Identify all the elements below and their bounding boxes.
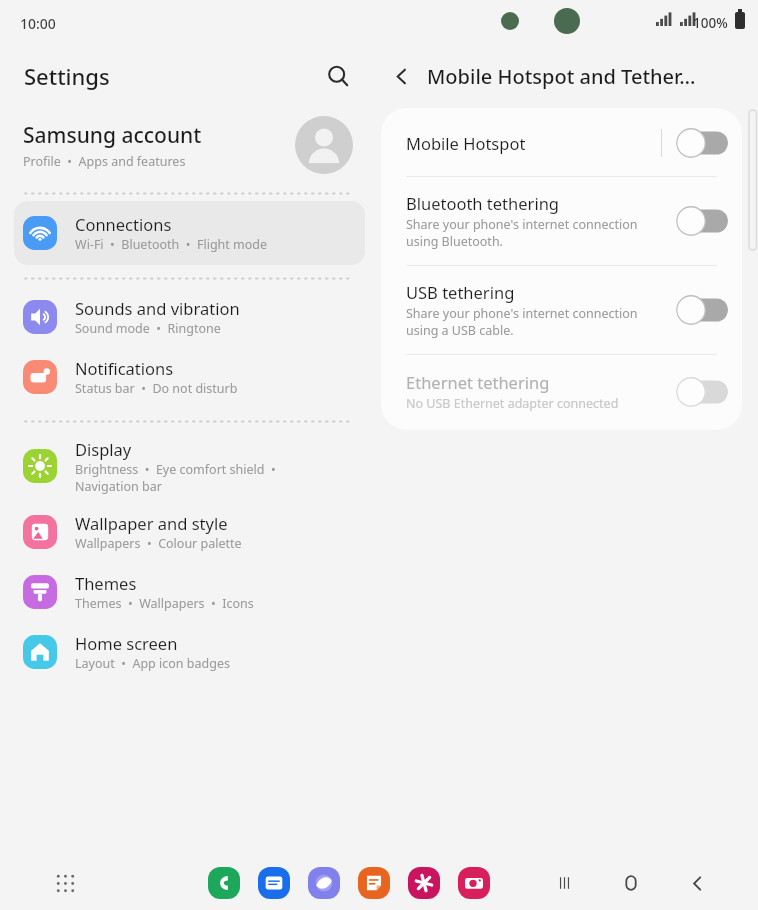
button[interactable]: Notifications: [14, 347, 365, 407]
staticText: Samsung account: [23, 121, 202, 150]
staticText: Status bar • Do not disturb: [75, 380, 238, 397]
staticText: Settings: [24, 61, 319, 91]
button[interactable]: Ethernet tethering: [381, 355, 742, 428]
button[interactable]: USB tethering: [676, 294, 728, 326]
button[interactable]: USB tethering: [381, 266, 742, 354]
button[interactable]: Recents: [548, 866, 582, 900]
button[interactable]: Connections: [14, 201, 365, 265]
staticText: Themes • Wallpapers • Icons: [75, 595, 254, 612]
button[interactable]: Samsung account: [14, 106, 365, 188]
button[interactable]: Display: [14, 430, 365, 502]
button[interactable]: Messages: [258, 867, 290, 899]
staticText: Themes: [75, 572, 137, 594]
staticText: Bluetooth tethering: [406, 192, 559, 214]
button[interactable]: Themes: [14, 562, 365, 622]
staticText: Mobile Hotspot and Tether…: [427, 63, 696, 90]
staticText: Share your phone's internet connection u…: [406, 305, 638, 339]
button[interactable]: Bluetooth tethering: [381, 177, 742, 265]
staticText: No USB Ethernet adapter connected: [406, 395, 619, 412]
button[interactable]: Apps: [48, 866, 82, 900]
button[interactable]: Galaxy Store: [408, 867, 440, 899]
staticText: Ethernet tethering: [406, 371, 550, 393]
button[interactable]: Home screen: [14, 622, 365, 682]
staticText: Home screen: [75, 632, 178, 654]
staticText: 100%: [693, 14, 728, 32]
staticText: 10:00: [20, 14, 56, 33]
staticText: Notifications: [75, 357, 174, 379]
button[interactable]: Ethernet tethering: [676, 376, 728, 408]
staticText: Wi-Fi • Bluetooth • Flight mode: [75, 236, 268, 253]
button[interactable]: Sounds and vibration: [14, 287, 365, 347]
staticText: Brightness • Eye comfort shield • Naviga…: [75, 461, 276, 494]
staticText: Wallpapers • Colour palette: [75, 535, 242, 552]
button[interactable]: Mobile Hotspot: [676, 127, 728, 159]
button[interactable]: Back: [381, 56, 421, 96]
staticText: Display: [75, 438, 132, 460]
button[interactable]: Mobile Hotspot: [381, 110, 742, 176]
staticText: Layout • App icon badges: [75, 655, 230, 672]
staticText: Profile • Apps and features: [23, 153, 186, 170]
button[interactable]: Camera: [458, 867, 490, 899]
button[interactable]: Phone: [208, 867, 240, 899]
button[interactable]: Search: [319, 57, 357, 95]
button[interactable]: Wallpaper and style: [14, 502, 365, 562]
staticText: Connections: [75, 213, 172, 235]
staticText: USB tethering: [406, 281, 515, 303]
staticText: Share your phone's internet connection u…: [406, 216, 638, 250]
staticText: Sound mode • Ringtone: [75, 320, 221, 337]
button[interactable]: Samsung Notes: [358, 867, 390, 899]
button[interactable]: Home: [614, 866, 648, 900]
button[interactable]: Bluetooth tethering: [676, 205, 728, 237]
staticText: Sounds and vibration: [75, 297, 240, 319]
staticText: Wallpaper and style: [75, 512, 228, 534]
button[interactable]: Internet: [308, 867, 340, 899]
button[interactable]: Back: [680, 866, 714, 900]
staticText: Mobile Hotspot: [406, 132, 526, 154]
